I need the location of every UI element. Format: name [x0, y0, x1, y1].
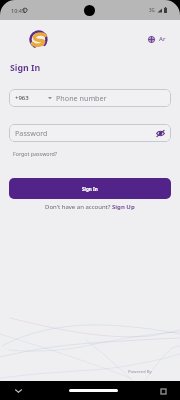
button[interactable]: Password — [9, 124, 171, 142]
staticText: Powered By — [128, 368, 152, 374]
button[interactable]: Home — [69, 389, 118, 392]
button[interactable]: Forgot password? — [13, 150, 58, 157]
button[interactable]: Sign In — [9, 178, 171, 199]
button[interactable]: Change language — [148, 35, 166, 43]
button[interactable]: Show password — [153, 126, 167, 140]
button[interactable]: Sign Up — [112, 203, 135, 211]
staticText: Password — [15, 128, 48, 138]
staticText: 3G — [149, 7, 155, 13]
button[interactable]: +963 — [9, 89, 171, 107]
staticText: 10:43 — [11, 7, 26, 14]
staticText: Sign In — [10, 62, 41, 74]
button[interactable]: Recents — [157, 385, 169, 397]
staticText: Don't have an account? — [45, 203, 112, 211]
button[interactable]: Back — [12, 385, 24, 397]
staticText: Ar — [159, 35, 166, 43]
staticText: +963 — [15, 94, 29, 102]
staticText: Phone number — [56, 93, 107, 103]
staticText: Sign In — [82, 186, 98, 192]
other: Change language — [148, 36, 155, 43]
